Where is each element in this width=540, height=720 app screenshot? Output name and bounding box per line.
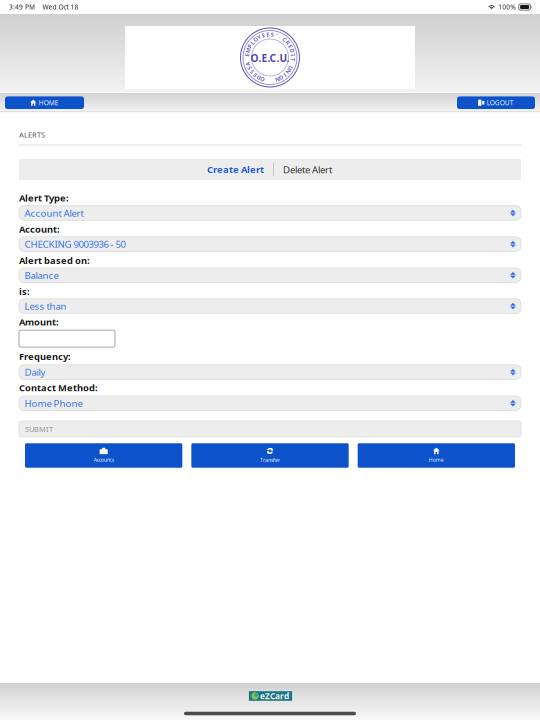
staticText: P <box>248 43 251 50</box>
button[interactable]: Accounts <box>25 443 182 468</box>
button[interactable]: Home <box>358 443 515 468</box>
staticText: is: <box>19 285 30 298</box>
staticText: Delete Alert <box>283 163 332 176</box>
staticText: O.E.C.U. <box>250 51 289 65</box>
staticText: T <box>292 56 295 63</box>
staticText: 100% <box>498 3 515 11</box>
staticText: E <box>245 51 248 59</box>
staticText: Balance <box>24 269 58 282</box>
staticText: eZCard <box>260 690 289 702</box>
button[interactable]: Balance <box>19 268 521 282</box>
staticText: C <box>283 36 287 43</box>
staticText: Account Alert <box>24 206 83 220</box>
staticText: S <box>250 68 253 76</box>
staticText: Account: <box>19 223 60 235</box>
staticText: Transfer <box>260 456 280 464</box>
staticText: I <box>292 51 294 59</box>
button[interactable]: SUBMIT <box>19 421 521 437</box>
staticText: R <box>286 39 290 46</box>
staticText: Alert based on: <box>19 254 90 267</box>
staticText: Home <box>429 456 444 463</box>
staticText: O <box>261 76 265 83</box>
button[interactable]: Transfer <box>191 443 349 468</box>
staticText: D <box>257 74 261 81</box>
button[interactable]: Create Alert <box>204 159 267 180</box>
staticText: Contact Method: <box>19 381 98 394</box>
staticText: E <box>266 31 269 38</box>
button[interactable]: Daily <box>19 365 521 379</box>
staticText: 3:49 PM <box>9 3 35 11</box>
button[interactable]: Account Alert <box>19 206 521 220</box>
staticText: S <box>271 31 274 38</box>
staticText: E <box>253 71 256 79</box>
button[interactable]: Delete Alert <box>280 159 335 180</box>
staticText: Home Phone <box>24 397 82 410</box>
staticText: LOGOUT <box>487 98 514 107</box>
staticText: Y <box>257 33 261 41</box>
button[interactable]: Less than <box>19 299 521 313</box>
staticText: D <box>290 47 294 54</box>
staticText: E <box>262 31 265 39</box>
staticText: L <box>251 39 254 46</box>
staticText: A <box>246 60 250 68</box>
staticText: Less than <box>24 300 66 313</box>
staticText: ALERTS <box>19 129 45 140</box>
staticText: HOME <box>39 98 59 107</box>
button[interactable]: CHECKING 9003936 - 50 <box>19 237 521 251</box>
staticText: N <box>286 68 291 76</box>
staticText: Accounts <box>94 456 114 463</box>
staticText: Amount: <box>19 316 59 328</box>
staticText: SUBMIT <box>25 424 53 434</box>
staticText: Create Alert <box>207 163 264 176</box>
staticText: Wed Oct 18 <box>42 3 78 11</box>
staticText: E <box>289 43 292 50</box>
staticText: S <box>248 64 251 72</box>
staticText: O <box>279 74 283 81</box>
staticText: Alert Type: <box>19 191 69 204</box>
staticText: Frequency: <box>19 350 71 363</box>
staticText: M <box>245 47 250 54</box>
staticText: ' <box>276 31 277 39</box>
staticText: I <box>284 71 286 79</box>
staticText: N <box>275 76 280 83</box>
staticText: Daily <box>24 366 45 379</box>
staticText: O <box>253 36 257 43</box>
staticText: U <box>289 64 293 72</box>
button[interactable]: Home Phone <box>19 396 521 410</box>
staticText: CHECKING 9003936 - 50 <box>24 238 125 251</box>
button[interactable]: HOME <box>5 96 84 109</box>
button[interactable]: LOGOUT <box>457 96 535 109</box>
